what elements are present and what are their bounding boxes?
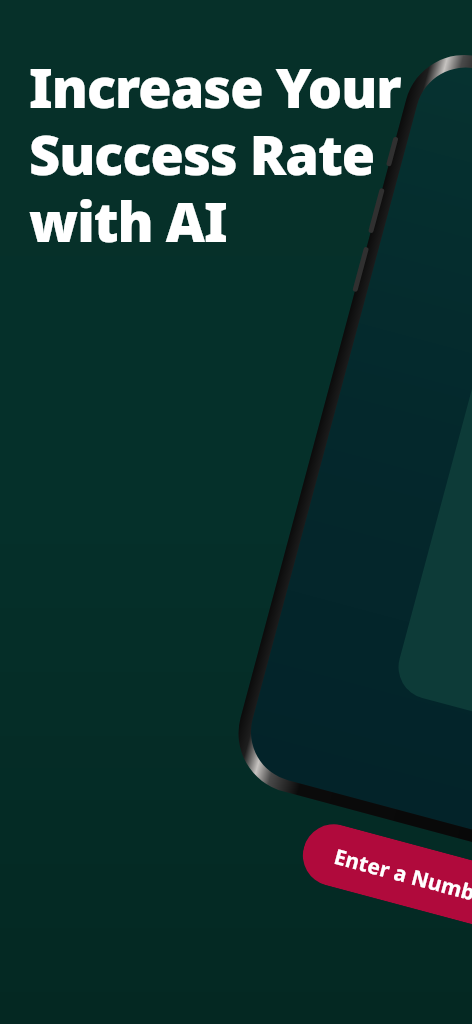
button[interactable]: Enter a Number <box>296 817 472 937</box>
staticText: Enter a Number <box>331 842 472 913</box>
staticText: Increase Your Success Rate with AI <box>29 50 449 257</box>
